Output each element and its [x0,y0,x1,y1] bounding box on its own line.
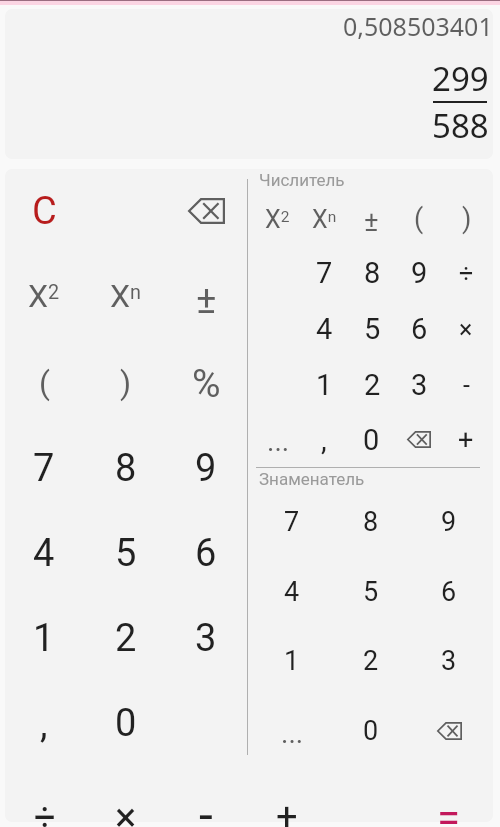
staticText: 588 [432,103,489,148]
button[interactable]: ± [348,199,394,245]
staticText: 8 [364,256,381,290]
staticText: 4 [284,576,300,608]
button[interactable]: - [166,786,246,827]
button[interactable]: ÷ [5,789,85,827]
staticText: 7 [316,256,333,290]
button[interactable]: 0 [347,413,395,467]
button[interactable]: 1 [262,628,322,694]
staticText: × [115,794,137,827]
staticText: 1 [316,368,333,402]
staticText: ÷ [34,795,56,827]
button[interactable]: 6 [419,559,479,625]
button[interactable]: 6 [166,512,246,594]
staticText: 9 [195,446,217,491]
staticText: 9 [411,256,428,290]
button[interactable]: ) [444,196,490,242]
button[interactable]: 3 [166,597,246,679]
button[interactable]: 2 [348,358,396,412]
button[interactable]: 6 [395,302,443,356]
button[interactable]: - [442,358,490,412]
button[interactable]: 5 [341,559,401,625]
staticText: 3 [411,368,428,402]
staticText: 4 [33,531,55,576]
staticText: 2 [115,616,137,661]
staticText: , [40,702,48,747]
staticText: % [192,361,221,407]
staticText: 4 [316,312,333,346]
button[interactable]: 8 [341,489,401,555]
button[interactable]: 0 [341,698,401,764]
button[interactable]: , [300,413,348,467]
button[interactable]: = [409,789,489,827]
button[interactable]: 2 [341,628,401,694]
staticText: - [199,786,213,827]
button[interactable]: ) [88,345,164,421]
button[interactable]: , [4,683,84,765]
button[interactable]: Backspace [176,186,237,236]
button[interactable]: 5 [348,302,396,356]
staticText: Числитель [259,170,345,190]
button[interactable]: 7 [300,246,348,300]
button[interactable]: × [442,302,490,356]
staticText: C [32,189,57,234]
button[interactable]: 3 [419,628,479,694]
staticText: 6 [441,576,457,608]
button[interactable]: 8 [348,246,396,300]
staticText: 6 [195,531,217,576]
button[interactable]: ( [396,196,442,242]
button[interactable]: % [168,346,244,422]
button[interactable]: 7 [262,489,322,555]
staticText: 6 [411,312,428,346]
staticText: = [437,793,461,827]
button[interactable]: 7 [4,427,84,509]
button[interactable]: X2 [254,196,300,242]
button[interactable]: X2 [6,258,82,334]
staticText: X2 [265,205,290,234]
staticText: Знаменатель [259,469,365,489]
button[interactable]: ... [262,700,322,766]
button[interactable]: 9 [395,246,443,300]
button[interactable]: + [442,413,490,467]
staticText: 3 [441,645,457,677]
button[interactable]: 1 [4,597,84,679]
staticText: 2 [364,368,381,402]
button[interactable]: 4 [300,302,348,356]
staticText: X2 [28,277,60,315]
button[interactable]: Backspace [395,419,443,460]
button[interactable]: Xn [301,196,347,242]
button[interactable]: 0 [86,682,166,764]
button[interactable]: ÷ [442,246,490,300]
button[interactable]: 2 [86,597,166,679]
staticText: , [321,423,327,457]
button[interactable]: C [2,169,86,253]
staticText: + [276,795,298,827]
button[interactable]: Backspace [425,710,474,752]
staticText: 0 [363,423,380,457]
staticText: 5 [115,531,137,576]
staticText: 5 [363,576,379,608]
staticText: 299 [432,56,489,101]
staticText: 0,508503401 [343,9,493,39]
button[interactable]: + [247,789,327,827]
staticText: ) [462,203,472,235]
button[interactable]: 9 [419,489,479,555]
staticText: - [463,371,470,400]
button[interactable]: 8 [86,427,166,509]
button[interactable]: ... [254,414,302,468]
button[interactable]: 4 [4,512,84,594]
button[interactable]: 4 [262,559,322,625]
staticText: ± [364,206,379,238]
button[interactable]: Xn [88,258,164,334]
button[interactable]: ( [6,345,82,421]
button[interactable]: 9 [166,427,246,509]
staticText: ... [281,717,304,750]
staticText: 0 [115,701,137,746]
staticText: 9 [441,506,457,538]
staticText: ÷ [459,259,474,288]
button[interactable]: 1 [300,358,348,412]
button[interactable]: 3 [395,358,443,412]
staticText: 5 [364,312,381,346]
button[interactable]: ± [168,262,244,338]
button[interactable]: 5 [86,512,166,594]
button[interactable]: × [86,789,166,827]
